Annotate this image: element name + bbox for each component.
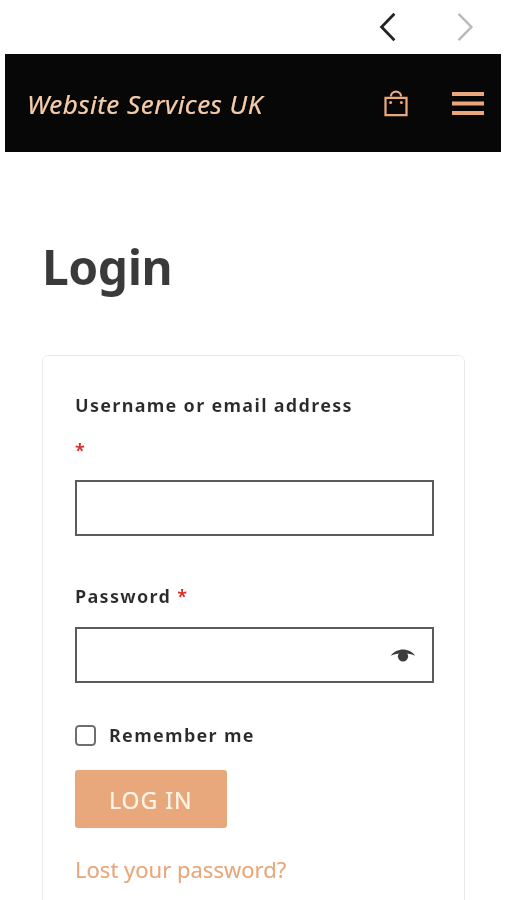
button[interactable]: Menu (445, 80, 491, 126)
button[interactable]: Remember me (75, 723, 255, 748)
staticText: Username or email address * (75, 393, 365, 462)
button[interactable]: Password field (75, 627, 434, 683)
button[interactable]: Show password (388, 640, 418, 670)
staticText: LOG IN (109, 784, 193, 815)
staticText: Login (42, 234, 173, 299)
staticText: Password * (75, 584, 187, 609)
button[interactable]: LOG IN (75, 770, 227, 828)
button[interactable]: Website Services UK (27, 86, 263, 121)
button[interactable]: Lost your password? (75, 854, 287, 884)
button[interactable]: Back (366, 5, 410, 49)
button[interactable]: Forward (443, 5, 487, 49)
button[interactable]: Username or email address field (75, 480, 434, 536)
staticText: Remember me (109, 723, 255, 748)
button[interactable]: Cart (373, 80, 419, 126)
